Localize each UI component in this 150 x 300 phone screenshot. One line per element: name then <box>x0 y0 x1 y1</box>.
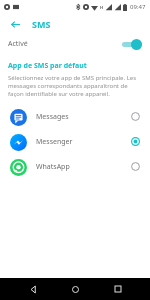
button[interactable]: Activé <box>0 34 150 54</box>
staticText: 09:47 <box>130 3 146 11</box>
button[interactable]: Back <box>8 17 22 31</box>
button[interactable]: Messages <box>0 104 150 129</box>
staticText: Messages <box>36 112 69 122</box>
staticText: Activé <box>8 39 28 49</box>
staticText: Messenger <box>36 137 73 147</box>
staticText: SMS <box>32 18 51 30</box>
staticText: H <box>100 5 104 10</box>
button[interactable]: Messenger <box>0 129 150 154</box>
staticText: Sélectionnez votre app de SMS principale… <box>8 74 140 98</box>
button[interactable]: Recent apps <box>108 279 128 299</box>
button[interactable]: WhatsApp <box>0 154 150 179</box>
button[interactable]: Back <box>23 279 43 299</box>
button[interactable]: Home <box>65 279 85 299</box>
staticText: App de SMS par défaut <box>8 61 87 71</box>
staticText: WhatsApp <box>36 162 70 172</box>
